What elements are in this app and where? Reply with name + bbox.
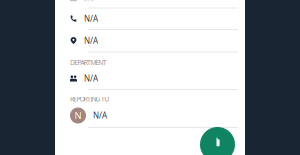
staticText: N/A [84,13,98,24]
button[interactable] [55,0,245,1]
button[interactable]: N/A [55,68,245,89]
staticText: N/A [84,35,98,46]
staticText: REPORTING TO [70,95,109,103]
staticText: DEPARTMENT [70,58,107,67]
button[interactable]: Call [200,127,235,155]
staticText: N/A [93,110,107,121]
staticText: N/A [84,73,98,84]
button[interactable]: N/A [55,30,245,51]
button[interactable]: N/A [55,8,245,29]
button[interactable]: N [55,104,245,127]
staticText: N [74,109,81,122]
